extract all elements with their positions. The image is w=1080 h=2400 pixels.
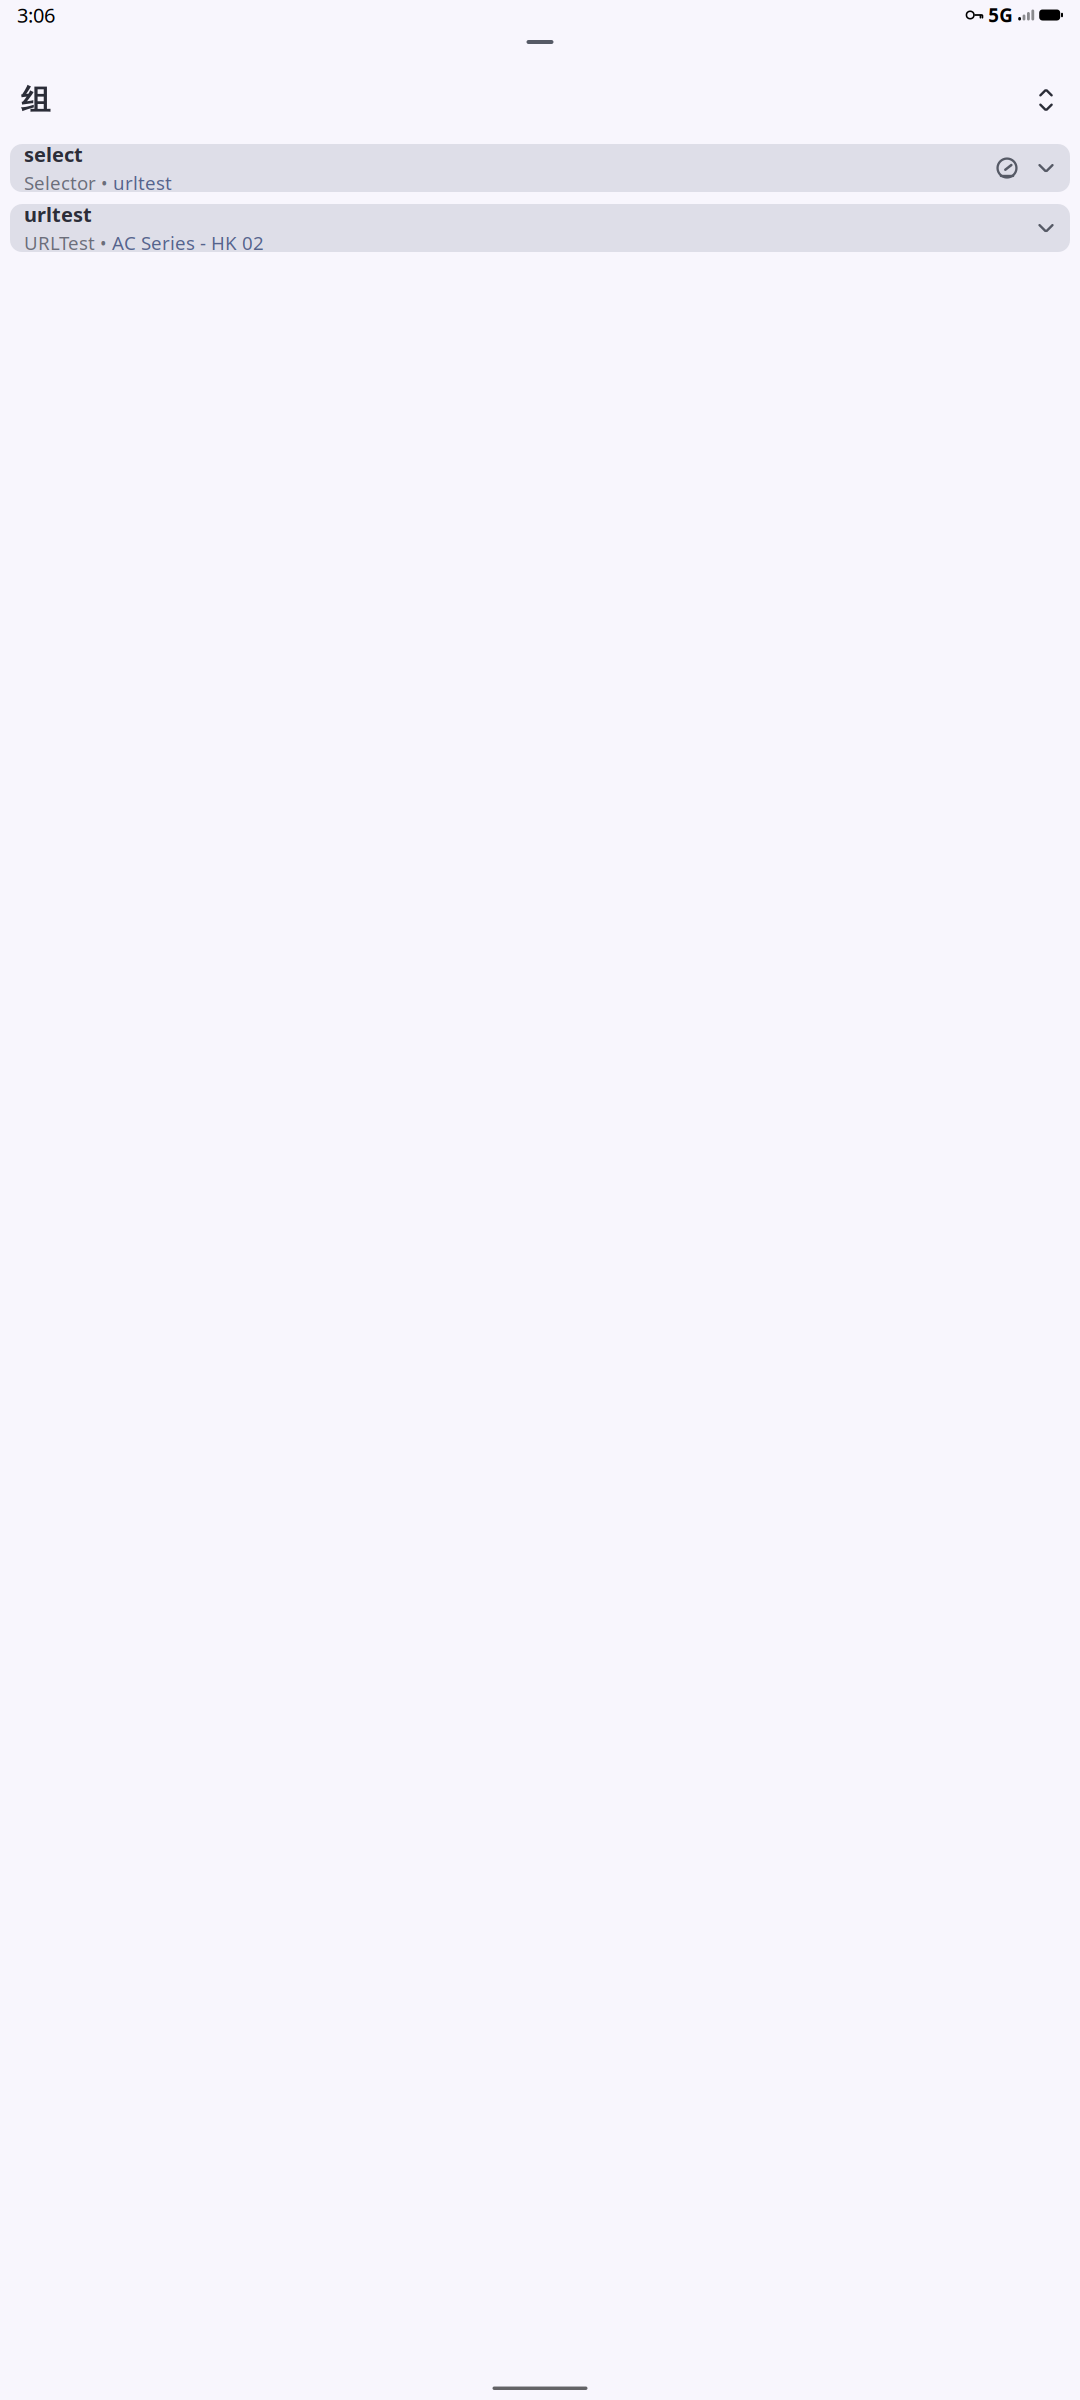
- staticText: Selector: [24, 170, 96, 195]
- staticText: urltest: [113, 170, 172, 195]
- staticText: select: [24, 141, 83, 167]
- staticText: URLTest: [24, 230, 95, 255]
- button[interactable]: urltest: [10, 204, 1070, 252]
- staticText: •: [100, 231, 107, 254]
- button[interactable]: select: [10, 144, 1070, 192]
- staticText: •: [101, 171, 108, 194]
- staticText: AC Series - HK 02: [112, 230, 264, 255]
- staticText: urltest: [24, 201, 92, 227]
- staticText: 组: [21, 82, 50, 118]
- staticText: 3:06: [17, 2, 55, 28]
- staticText: 5G: [988, 3, 1013, 27]
- button[interactable]: Sort: [1033, 85, 1059, 115]
